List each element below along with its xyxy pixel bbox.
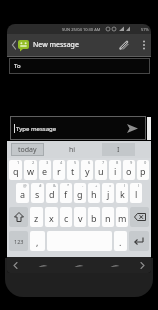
staticText: f (64, 188, 68, 200)
staticText: p (140, 165, 146, 177)
button[interactable]: f (60, 183, 72, 203)
staticText: SUN 25/04 10:30 AM (62, 27, 101, 32)
staticText: g (77, 188, 83, 200)
button[interactable] (126, 123, 139, 134)
staticText: 57% (141, 27, 149, 32)
button[interactable]: k (116, 183, 128, 203)
staticText: e (42, 165, 48, 177)
button[interactable]: hi (69, 145, 76, 155)
button[interactable] (130, 207, 149, 227)
staticText: z (34, 212, 39, 224)
staticText: New message (33, 40, 79, 50)
staticText: 0 (144, 160, 147, 165)
button[interactable] (74, 264, 84, 268)
button[interactable]: To (10, 59, 149, 73)
staticText: u (98, 165, 104, 177)
button[interactable]: l (130, 183, 142, 203)
button[interactable]: . (114, 231, 127, 251)
button[interactable]: v (74, 207, 86, 227)
button[interactable]: d (46, 183, 58, 203)
staticText: h (91, 188, 97, 200)
staticText: v (78, 212, 83, 224)
staticText: . (119, 236, 122, 248)
staticText: - (82, 183, 84, 188)
staticText: w (27, 165, 35, 177)
staticText: 2 (32, 160, 35, 165)
staticText: = (109, 183, 112, 188)
button[interactable]: u (95, 160, 107, 180)
button[interactable] (118, 39, 130, 51)
button[interactable]: s (31, 183, 44, 203)
button[interactable] (13, 262, 18, 269)
staticText: 8 (116, 160, 119, 165)
button[interactable]: p (137, 160, 149, 180)
staticText: 4 (60, 160, 63, 165)
staticText: To (14, 62, 21, 70)
button[interactable]: r (53, 160, 65, 180)
staticText: t (71, 165, 75, 177)
staticText: ) (138, 183, 140, 188)
button[interactable] (11, 39, 17, 51)
button[interactable]: n (102, 207, 114, 227)
button[interactable]: 123 (9, 231, 28, 251)
button[interactable]: I (102, 143, 135, 156)
staticText: 7 (102, 160, 105, 165)
button[interactable]: j (102, 183, 114, 203)
staticText: o (126, 165, 132, 177)
staticText: j (107, 188, 110, 200)
staticText: k (120, 188, 125, 200)
button[interactable] (129, 231, 149, 251)
staticText: & (53, 183, 56, 188)
button[interactable]: g (74, 183, 86, 203)
button[interactable] (140, 262, 145, 269)
button[interactable] (110, 264, 120, 268)
staticText: today (18, 145, 37, 155)
button[interactable]: Type message (11, 117, 145, 139)
button[interactable] (38, 264, 48, 268)
staticText: s (35, 188, 40, 200)
button[interactable]: c (60, 207, 72, 227)
button[interactable] (17, 39, 30, 52)
staticText: y (85, 165, 90, 177)
button[interactable] (9, 207, 28, 227)
button[interactable]: i (109, 160, 121, 180)
button[interactable]: e (39, 160, 51, 180)
staticText: 123 (14, 238, 24, 245)
staticText: i (114, 165, 117, 177)
button[interactable]: h (88, 183, 100, 203)
staticText: x (49, 212, 54, 224)
staticText: a (20, 188, 26, 200)
staticText: # (39, 183, 42, 188)
button[interactable] (142, 39, 146, 51)
staticText: q (13, 165, 19, 177)
staticText: c (64, 212, 69, 224)
staticText: 3 (46, 160, 49, 165)
staticText: Type message (16, 125, 57, 133)
button[interactable]: today (12, 144, 43, 155)
button[interactable]: b (88, 207, 100, 227)
staticText: 1 (17, 160, 20, 165)
staticText: + (95, 183, 98, 188)
button[interactable]: , (30, 231, 45, 251)
button[interactable]: x (45, 207, 58, 227)
button[interactable]: o (123, 160, 135, 180)
staticText: m (118, 212, 127, 224)
staticText: l (135, 188, 138, 200)
button[interactable]: y (81, 160, 93, 180)
staticText: 9 (130, 160, 133, 165)
staticText: * (67, 183, 70, 188)
button[interactable]: a (16, 183, 29, 203)
staticText: hi (69, 145, 76, 155)
button[interactable]: t (67, 160, 79, 180)
staticText: b (91, 212, 97, 224)
button[interactable]: z (30, 207, 43, 227)
button[interactable]: q (9, 160, 22, 180)
button[interactable]: w (24, 160, 37, 180)
staticText: 6 (88, 160, 91, 165)
staticText: n (105, 212, 111, 224)
staticText: r (57, 165, 61, 177)
staticText: I (117, 145, 120, 155)
button[interactable]: m (116, 207, 128, 227)
